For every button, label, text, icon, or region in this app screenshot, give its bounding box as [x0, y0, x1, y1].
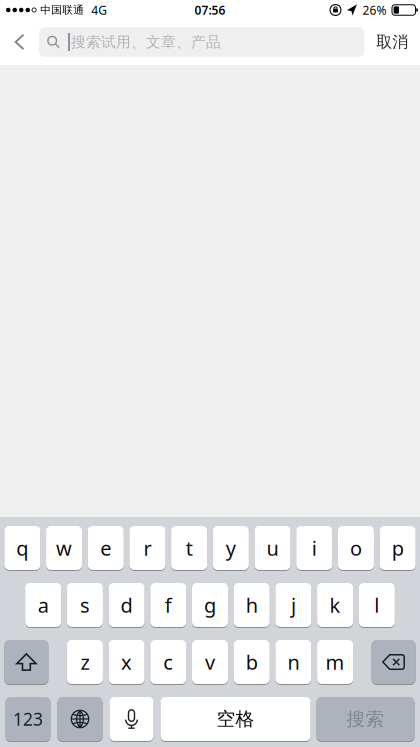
staticText: a	[38, 592, 49, 618]
staticText: z	[80, 649, 89, 675]
staticText: v	[205, 649, 215, 675]
staticText: b	[246, 649, 258, 675]
button[interactable]: 搜索	[316, 697, 414, 741]
staticText: q	[16, 535, 28, 561]
staticText: 123	[13, 707, 43, 730]
button[interactable]: m	[317, 640, 353, 684]
staticText: h	[246, 592, 258, 618]
staticText: u	[266, 535, 278, 561]
staticText: 搜索	[346, 707, 384, 730]
button[interactable]: u	[254, 526, 290, 570]
button[interactable]: k	[317, 583, 353, 627]
button[interactable]: i	[296, 526, 332, 570]
staticText: y	[226, 535, 236, 561]
button[interactable]: g	[192, 583, 228, 627]
staticText: k	[330, 592, 341, 618]
button[interactable]: f	[150, 583, 186, 627]
button[interactable]: p	[380, 526, 416, 570]
button[interactable]: 搜索试用、文章、产品	[39, 27, 364, 57]
staticText: 26%	[362, 2, 386, 18]
button[interactable]: q	[4, 526, 40, 570]
staticText: i	[312, 535, 317, 561]
staticText: n	[287, 649, 299, 675]
staticText: 取消	[376, 32, 408, 52]
staticText: 中国联通	[40, 3, 84, 16]
button[interactable]: Dictate	[109, 697, 153, 741]
staticText: l	[374, 592, 379, 618]
button[interactable]: Shift	[4, 640, 48, 684]
button[interactable]: w	[46, 526, 82, 570]
button[interactable]: z	[67, 640, 103, 684]
button[interactable]: 取消	[364, 20, 420, 64]
button[interactable]: b	[234, 640, 270, 684]
staticText: s	[80, 592, 90, 618]
button[interactable]: Delete	[372, 640, 416, 684]
button[interactable]: a	[25, 583, 61, 627]
button[interactable]: o	[338, 526, 374, 570]
button[interactable]: j	[275, 583, 311, 627]
staticText: j	[291, 592, 296, 618]
staticText: e	[100, 535, 111, 561]
staticText: r	[143, 535, 151, 561]
button[interactable]: s	[67, 583, 103, 627]
button[interactable]: d	[109, 583, 145, 627]
button[interactable]: Back	[0, 20, 39, 64]
button[interactable]: e	[88, 526, 124, 570]
staticText: o	[350, 535, 362, 561]
staticText: x	[121, 649, 132, 675]
staticText: g	[204, 592, 216, 618]
staticText: f	[165, 592, 172, 618]
button[interactable]: r	[129, 526, 165, 570]
button[interactable]: y	[213, 526, 249, 570]
button[interactable]: c	[150, 640, 186, 684]
staticText: w	[56, 535, 72, 561]
staticText: t	[186, 535, 193, 561]
staticText: m	[326, 649, 345, 675]
button[interactable]: l	[359, 583, 395, 627]
staticText: 搜索试用、文章、产品	[71, 33, 221, 51]
button[interactable]: n	[275, 640, 311, 684]
staticText: d	[121, 592, 133, 618]
staticText: c	[163, 649, 173, 675]
staticText: p	[392, 535, 404, 561]
button[interactable]: h	[234, 583, 270, 627]
staticText: 空格	[216, 707, 254, 730]
button[interactable]: 123	[5, 697, 50, 741]
button[interactable]: v	[192, 640, 228, 684]
button[interactable]: 空格	[160, 697, 310, 741]
button[interactable]: t	[171, 526, 207, 570]
button[interactable]: x	[109, 640, 145, 684]
staticText: 4G	[91, 2, 107, 18]
button[interactable]: Next keyboard	[57, 697, 102, 741]
staticText: 07:56	[194, 2, 225, 18]
